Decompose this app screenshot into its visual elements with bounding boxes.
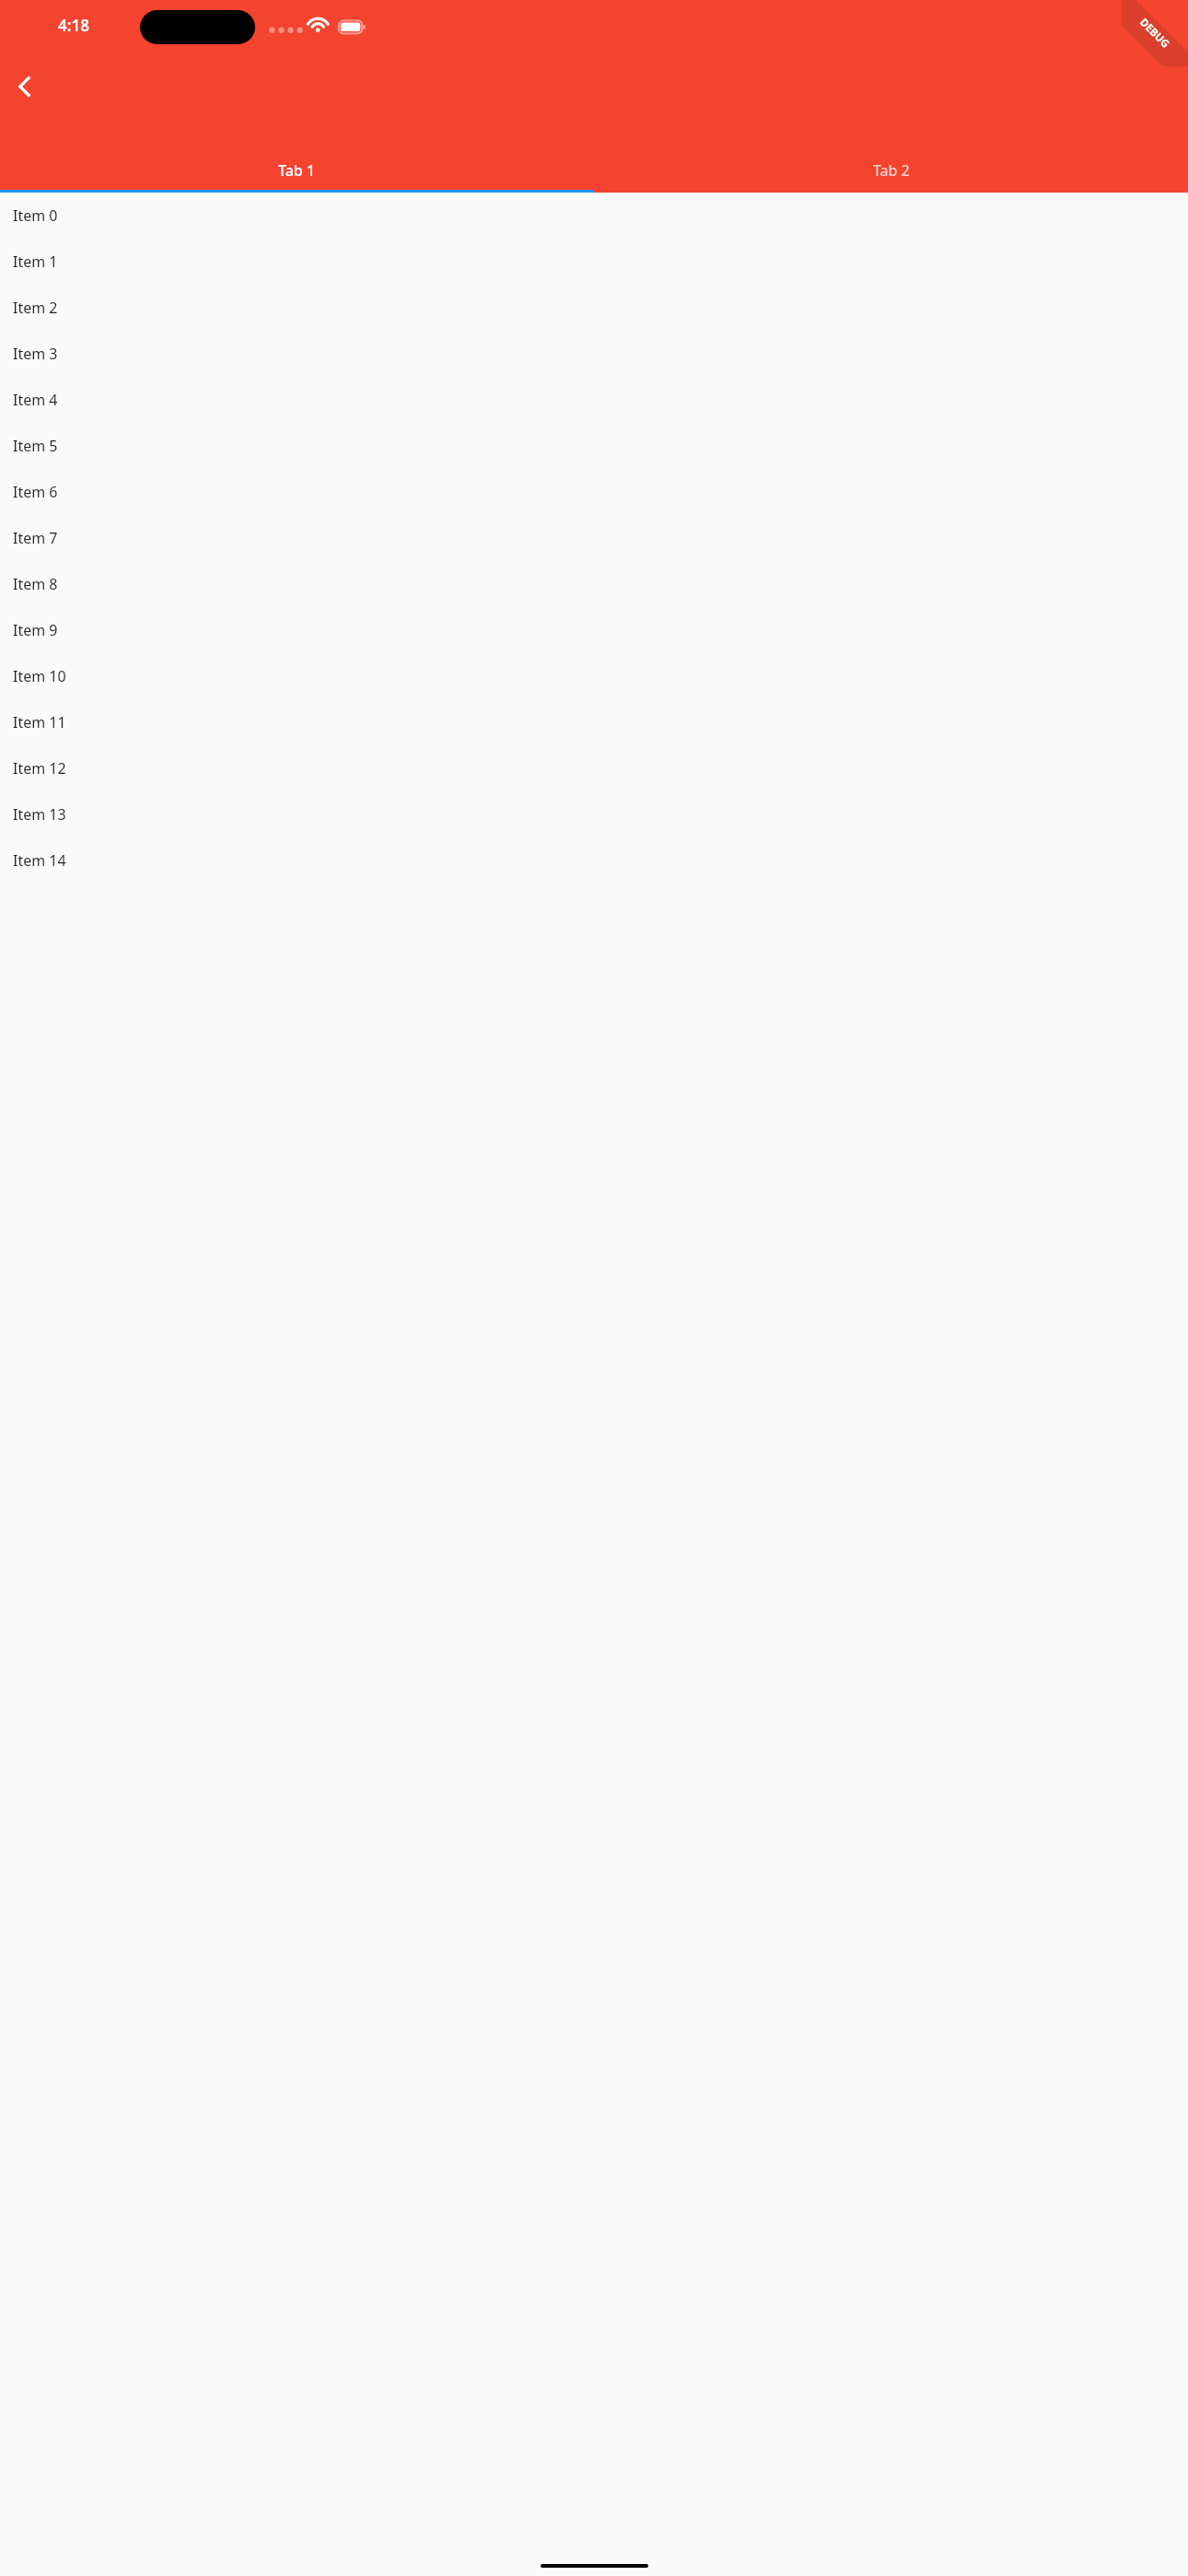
button[interactable]: Item 4 <box>0 377 1188 423</box>
staticText: Tab 2 <box>873 160 910 181</box>
staticText: Item 5 <box>13 436 58 456</box>
button[interactable]: Item 5 <box>0 423 1188 469</box>
button[interactable]: Item 13 <box>0 791 1188 837</box>
button[interactable]: Item 9 <box>0 607 1188 653</box>
staticText: Item 8 <box>13 574 58 594</box>
button[interactable]: Item 2 <box>0 285 1188 331</box>
staticText: 4:18 <box>55 15 92 36</box>
staticText: Item 14 <box>13 850 66 871</box>
staticText: DEBUG <box>1137 15 1173 51</box>
staticText: Item 10 <box>13 666 66 686</box>
button[interactable]: Item 12 <box>0 745 1188 791</box>
staticText: Item 7 <box>13 528 58 548</box>
button[interactable]: Item 7 <box>0 515 1188 561</box>
button[interactable]: Item 3 <box>0 331 1188 377</box>
staticText: Item 13 <box>13 804 66 825</box>
staticText: Item 6 <box>13 482 58 502</box>
staticText: Tab 1 <box>278 160 316 181</box>
staticText: Item 2 <box>13 298 58 318</box>
button[interactable]: Item 6 <box>0 469 1188 515</box>
staticText: Item 4 <box>13 390 58 410</box>
staticText: Item 12 <box>13 758 66 779</box>
button[interactable]: Item 0 <box>0 193 1188 239</box>
button[interactable]: Item 11 <box>0 699 1188 745</box>
button[interactable]: Item 10 <box>0 653 1188 699</box>
staticText: Item 9 <box>13 620 58 640</box>
button[interactable]: Tab 1 <box>0 148 594 193</box>
button[interactable]: Item 14 <box>0 837 1188 884</box>
staticText: Item 1 <box>13 252 58 272</box>
button[interactable]: Back <box>2 64 48 110</box>
staticText: Item 11 <box>13 712 66 732</box>
button[interactable]: Item 1 <box>0 239 1188 285</box>
staticText: Item 0 <box>13 205 58 226</box>
button[interactable]: Item 8 <box>0 561 1188 607</box>
staticText: Item 3 <box>13 344 58 364</box>
button[interactable]: Tab 2 <box>594 148 1188 193</box>
